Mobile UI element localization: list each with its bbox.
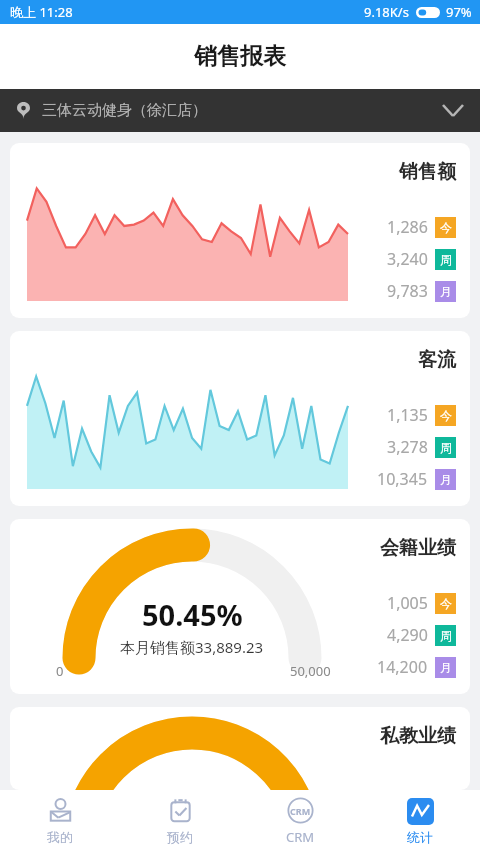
staticText: 1,005 <box>387 592 428 614</box>
staticText: CRM <box>286 828 315 846</box>
staticText: 私教业绩 <box>380 724 456 748</box>
other: Expand store selector <box>443 105 463 116</box>
staticText: 周 <box>440 252 452 267</box>
staticText: 1,135 <box>387 404 428 426</box>
button[interactable]: CRM <box>240 790 360 853</box>
button[interactable]: 私教业绩 <box>10 707 470 790</box>
staticText: 客流 <box>418 348 456 372</box>
staticText: 晚上 11:28 <box>10 3 73 21</box>
button[interactable]: 预约 <box>120 790 240 853</box>
button[interactable]: 50.45% <box>10 519 470 694</box>
button[interactable]: Statistics <box>360 790 480 853</box>
staticText: 周 <box>440 628 452 643</box>
staticText: 14,200 <box>377 656 428 678</box>
staticText: 50.45% <box>142 595 243 634</box>
staticText: 三体云动健身（徐汇店） <box>42 101 207 120</box>
staticText: 月 <box>440 660 452 675</box>
staticText: 4,290 <box>387 624 428 646</box>
staticText: 本月销售额33,889.23 <box>120 637 264 657</box>
staticText: 50,000 <box>290 662 331 680</box>
staticText: 今 <box>440 596 452 611</box>
staticText: 周 <box>440 440 452 455</box>
staticText: 统计 <box>407 829 433 845</box>
button[interactable]: 我的 <box>0 790 120 853</box>
staticText: 会籍业绩 <box>380 536 456 560</box>
staticText: 3,240 <box>387 248 428 270</box>
staticText: 9.18K/s <box>364 3 409 21</box>
staticText: 月 <box>440 472 452 487</box>
button[interactable]: 销售额 <box>10 143 470 318</box>
staticText: 9,783 <box>387 280 428 302</box>
staticText: 销售额 <box>399 160 456 184</box>
staticText: 97% <box>446 3 472 21</box>
staticText: 1,286 <box>387 216 428 238</box>
button[interactable]: 三体云动健身（徐汇店） <box>0 89 480 132</box>
staticText: 10,345 <box>377 468 428 490</box>
staticText: 我的 <box>47 829 73 845</box>
staticText: 预约 <box>167 829 193 845</box>
staticText: 0 <box>56 662 64 680</box>
staticText: 今 <box>440 408 452 423</box>
staticText: CRM <box>290 805 311 817</box>
staticText: 销售报表 <box>194 42 286 71</box>
staticText: 月 <box>440 284 452 299</box>
other: Statistics <box>407 798 434 825</box>
staticText: 今 <box>440 220 452 235</box>
staticText: 3,278 <box>387 436 428 458</box>
button[interactable]: 客流 <box>10 331 470 506</box>
